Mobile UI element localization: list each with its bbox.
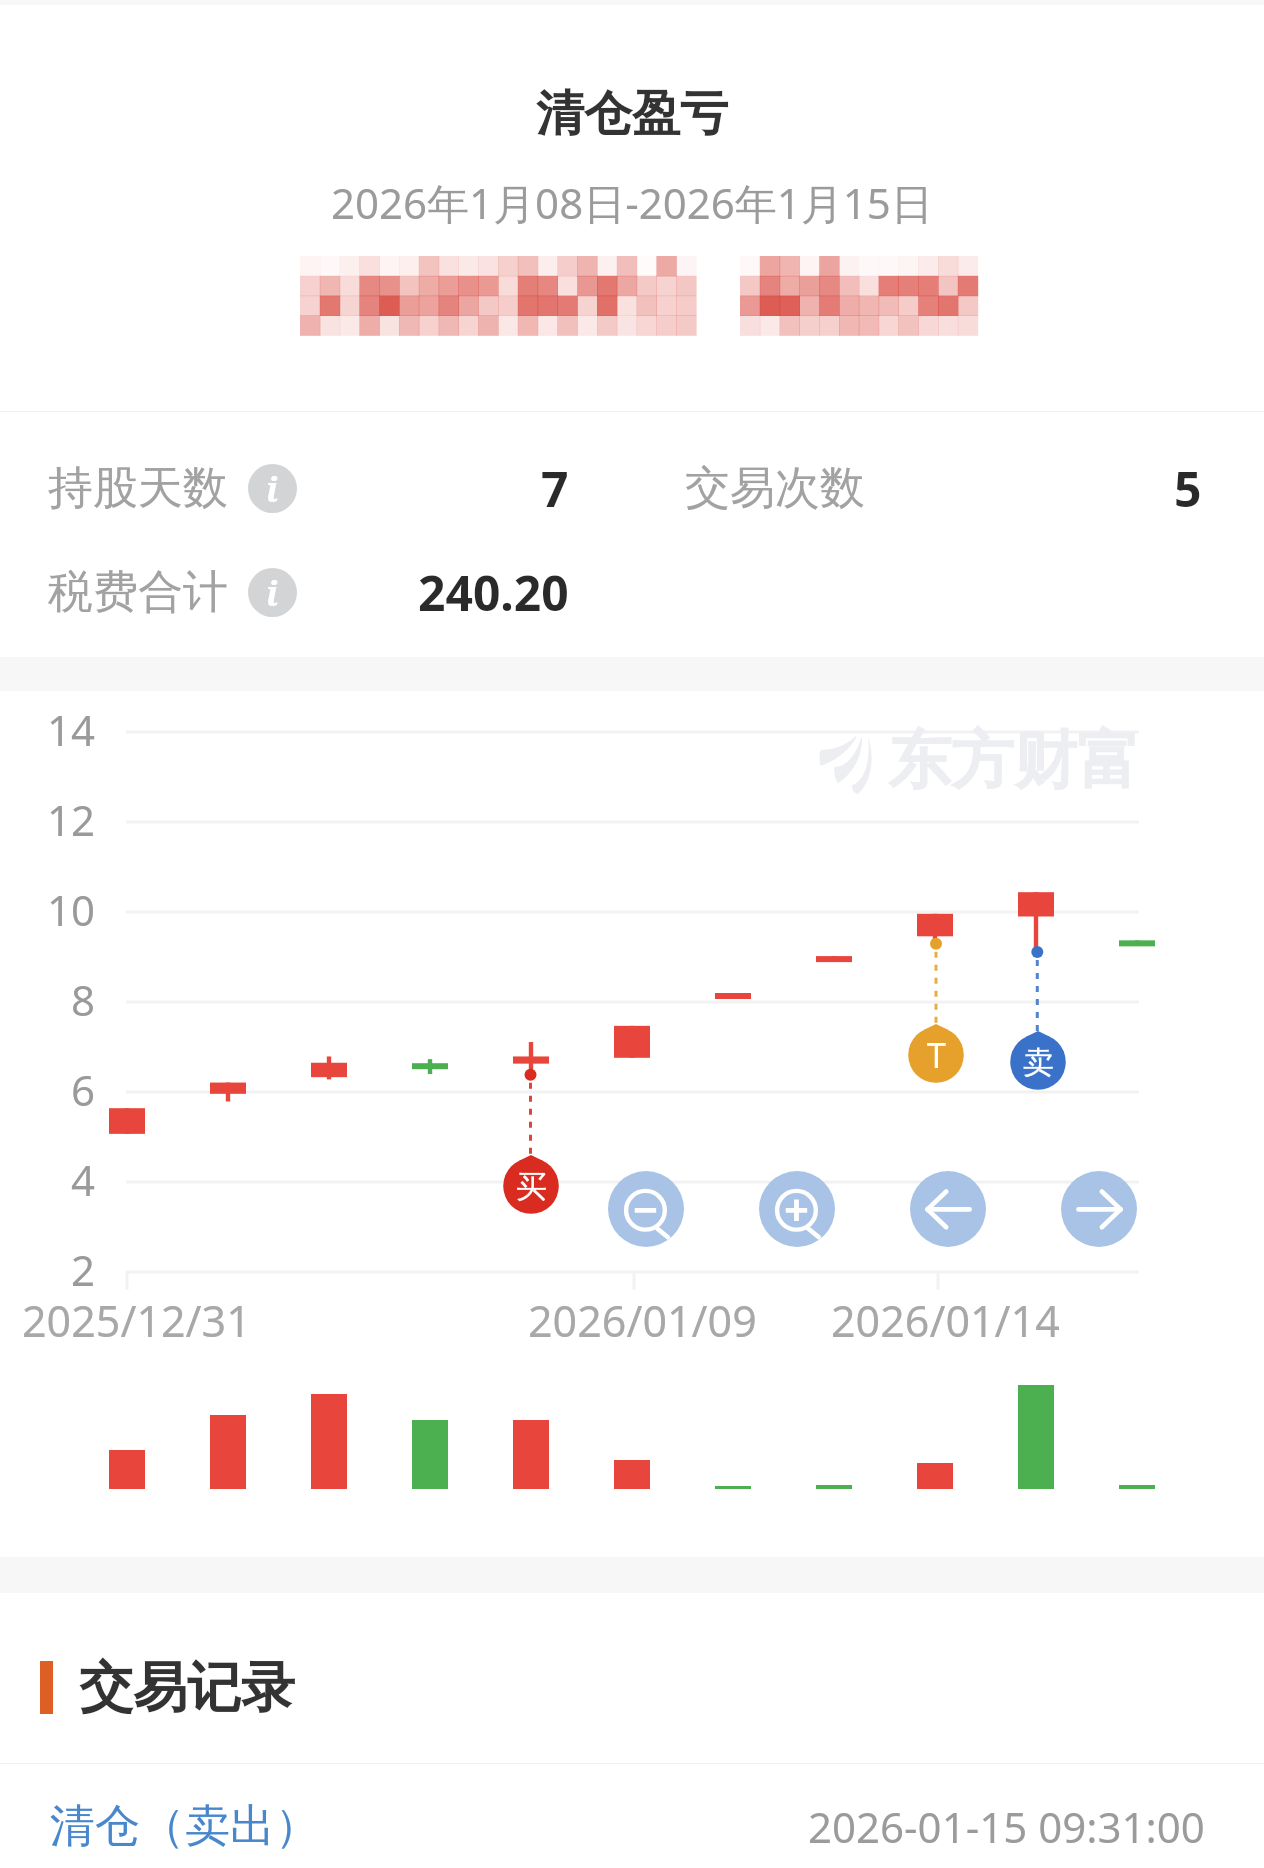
staticText: 5: [1174, 456, 1202, 520]
staticText: 240.20: [418, 560, 569, 624]
staticText: 持股天数: [48, 460, 228, 517]
staticText: 清仓盈亏: [536, 84, 728, 144]
staticText: 12: [47, 791, 96, 848]
staticText: 6: [71, 1061, 96, 1118]
staticText: 2026/01/14: [831, 1291, 1060, 1350]
button[interactable]: Info: [248, 464, 297, 513]
staticText: 2026-01-15 09:31:00: [808, 1798, 1205, 1855]
staticText: 10: [47, 881, 96, 938]
staticText: 税费合计: [48, 564, 228, 621]
staticText: 2025/12/31: [22, 1291, 251, 1350]
staticText: 卖: [1023, 1043, 1054, 1082]
staticText: 2026年1月08日-2026年1月15日: [331, 174, 933, 231]
staticText: 7: [541, 456, 569, 520]
button[interactable]: 买: [500, 1152, 562, 1245]
staticText: 交易次数: [685, 460, 865, 517]
staticText: 清仓（卖出）: [50, 1798, 320, 1855]
staticText: 买: [516, 1167, 547, 1206]
button[interactable]: Scroll left: [910, 1171, 986, 1247]
button[interactable]: 卖: [1007, 1028, 1069, 1121]
staticText: 2026/01/09: [528, 1291, 757, 1350]
staticText: T: [927, 1032, 946, 1078]
button[interactable]: Scroll right: [1061, 1171, 1137, 1247]
staticText: 2: [71, 1241, 96, 1298]
staticText: 14: [47, 701, 96, 758]
staticText: 东方财富: [888, 721, 1140, 800]
button[interactable]: Zoom in: [759, 1171, 835, 1247]
staticText: 4: [71, 1151, 96, 1208]
staticText: i: [266, 466, 279, 512]
button[interactable]: T: [905, 1021, 967, 1114]
staticText: i: [266, 570, 279, 616]
button[interactable]: Zoom out: [608, 1171, 684, 1247]
staticText: 8: [71, 971, 96, 1028]
button[interactable]: 清仓（卖出）: [0, 1764, 1264, 1868]
button[interactable]: Info: [248, 568, 297, 617]
staticText: 交易记录: [79, 1654, 295, 1722]
